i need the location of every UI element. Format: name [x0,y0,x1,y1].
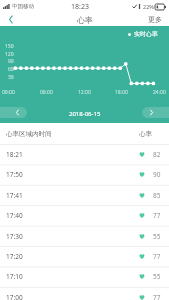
staticText: 18:00 [115,89,128,96]
staticText: 17:10 [6,272,23,281]
staticText: 17:00 [6,293,23,300]
staticText: 06:00 [40,89,53,96]
button[interactable]: Previous day [0,107,27,118]
button[interactable]: 17:20 [0,247,169,266]
staticText: 心率 [139,130,152,138]
button[interactable]: Next day [142,107,169,118]
staticText: 心率区域内时间 [6,130,52,138]
staticText: 85 [153,191,161,200]
staticText: 22% [143,3,154,10]
staticText: 90 [153,170,161,179]
button[interactable]: 18:21 [0,145,169,164]
button[interactable]: 17:50 [0,165,169,184]
staticText: 12:00 [78,89,91,96]
staticText: 17:30 [6,232,23,241]
staticText: 77 [153,252,161,261]
staticText: 心率 [77,15,93,25]
staticText: 55 [153,232,161,241]
staticText: 77 [153,211,161,220]
staticText: 77 [153,293,161,300]
staticText: 17:20 [6,252,23,261]
button[interactable]: Back [0,13,22,26]
staticText: 120 [5,51,14,58]
staticText: 更多 [148,15,162,24]
staticText: 00:00 [2,89,15,96]
staticText: 60 [8,66,14,73]
staticText: 24:00 [153,89,166,96]
staticText: 30 [8,74,14,81]
button[interactable]: 17:40 [0,206,169,225]
staticText: 18:21 [6,150,23,159]
button[interactable]: 17:41 [0,186,169,205]
staticText: 90 [8,58,14,65]
staticText: 150 [5,43,14,50]
staticText: 55 [153,272,161,281]
button[interactable]: 17:10 [0,267,169,286]
staticText: 82 [153,150,161,159]
staticText: 2018-06-15 [69,110,101,118]
staticText: 中国移动 [12,3,34,10]
staticText: 18:23 [71,2,89,12]
button[interactable]: 更多 [141,13,169,26]
staticText: 17:40 [6,211,23,220]
button[interactable]: 17:30 [0,227,169,246]
staticText: 17:50 [6,170,23,179]
button[interactable]: 17:00 [0,288,169,300]
staticText: 17:41 [6,191,23,200]
staticText: 实时心率 [134,30,158,38]
